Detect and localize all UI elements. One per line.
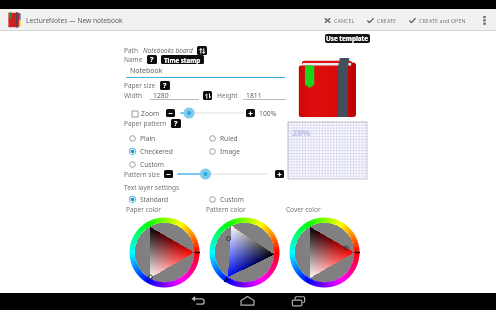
staticText: 1280 [153, 91, 169, 100]
button[interactable]: CREATE [361, 9, 403, 31]
staticText: Paper pattern [124, 119, 167, 128]
button[interactable]: Slider [178, 169, 268, 179]
staticText: CANCEL [334, 17, 355, 24]
staticText: Pattern color [206, 205, 246, 214]
staticText: ? [174, 119, 178, 128]
button[interactable]: CANCEL [318, 9, 361, 31]
staticText: Notebook [130, 66, 163, 76]
button[interactable]: Slider [181, 108, 243, 118]
button[interactable]: Help [160, 81, 170, 90]
button[interactable]: Custom [209, 193, 244, 205]
button[interactable]: Back [189, 293, 207, 310]
button[interactable]: Use template [325, 34, 370, 43]
button[interactable]: CREATE and OPEN [403, 9, 472, 31]
button[interactable]: Paper preview [288, 122, 367, 179]
button[interactable]: Color wheel [129, 217, 200, 288]
staticText: Path [124, 46, 138, 55]
button[interactable]: Help [171, 119, 181, 128]
staticText: LectureNotes — New notebook [26, 16, 123, 25]
staticText: Use template [326, 34, 369, 43]
staticText: Height [217, 91, 238, 100]
button[interactable]: Plain [129, 132, 156, 144]
button[interactable]: More options [472, 9, 496, 31]
staticText: Plain [140, 134, 156, 143]
staticText: Standard [140, 195, 169, 204]
staticText: ? [163, 81, 167, 90]
staticText: 28% [292, 126, 311, 138]
staticText: Custom [220, 195, 244, 204]
button[interactable]: Custom [129, 158, 164, 170]
staticText: Ruled [220, 134, 238, 143]
staticText: Name [124, 55, 143, 64]
button[interactable]: Increase zoom [246, 109, 255, 117]
staticText: Cover color [286, 205, 321, 214]
staticText: CREATE and OPEN [419, 17, 466, 24]
staticText: Zoom [141, 109, 160, 118]
button[interactable]: Checkered [129, 145, 173, 157]
button[interactable]: Choose folder [197, 46, 207, 55]
staticText: Text layer settings [124, 183, 180, 192]
button[interactable]: 1280 [150, 91, 199, 100]
staticText: Time stamp [164, 56, 201, 64]
button[interactable]: Color wheel [289, 217, 360, 288]
staticText: Pattern size [124, 170, 160, 179]
staticText: Paper size [124, 81, 156, 90]
staticText: Checkered [140, 147, 173, 156]
staticText: Paper color [126, 205, 161, 214]
button[interactable]: Image [209, 145, 240, 157]
button[interactable]: Standard [129, 193, 169, 205]
button[interactable]: Recent apps [289, 293, 307, 310]
button[interactable]: Insert time stamp [161, 55, 204, 64]
button[interactable]: 1811 [243, 91, 286, 100]
staticText: CREATE [377, 17, 397, 24]
staticText: Custom [140, 160, 164, 169]
button[interactable]: Decrease pattern size [164, 170, 173, 178]
button[interactable]: Swap width and height [203, 91, 212, 100]
button[interactable]: Home [238, 293, 256, 310]
staticText: Image [220, 147, 240, 156]
button[interactable]: Zoom [130, 109, 139, 118]
button[interactable]: Decrease zoom [166, 109, 175, 117]
button[interactable]: Increase pattern size [275, 170, 284, 178]
button[interactable]: Ruled [209, 132, 238, 144]
staticText: ? [150, 55, 154, 64]
staticText: 100% [259, 109, 277, 118]
staticText: Notebooks board [143, 46, 193, 55]
staticText: Width [124, 91, 143, 100]
button[interactable]: Help [147, 55, 157, 64]
button[interactable]: Color wheel [209, 217, 280, 288]
staticText: 1811 [246, 91, 262, 100]
